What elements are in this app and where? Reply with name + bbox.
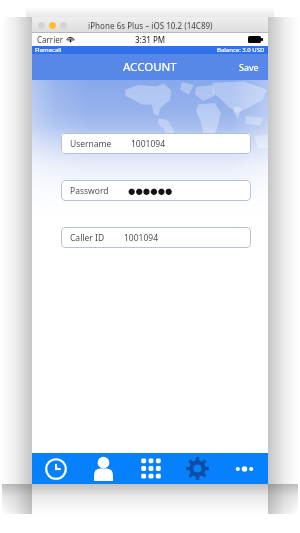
staticText: 1001094 bbox=[131, 138, 166, 150]
staticText: Save bbox=[239, 61, 259, 73]
button[interactable]: Password bbox=[61, 180, 251, 201]
button[interactable]: Settings bbox=[174, 453, 221, 484]
staticText: ACCOUNT bbox=[123, 59, 177, 75]
button[interactable]: Username bbox=[61, 133, 251, 154]
button[interactable]: Recents bbox=[32, 453, 80, 484]
button[interactable]: Keypad bbox=[127, 453, 174, 484]
button[interactable]: Contacts bbox=[80, 453, 127, 484]
staticText: 1001094 bbox=[124, 232, 159, 244]
staticText: Flamecall bbox=[35, 46, 62, 54]
staticText: iPhone 6s Plus – iOS 10.2 (14C89) bbox=[88, 20, 213, 31]
staticText: Balance: 3.0 USD bbox=[217, 46, 265, 54]
staticText: Caller ID bbox=[70, 232, 105, 244]
staticText: Carrier bbox=[37, 34, 64, 45]
button[interactable]: More bbox=[221, 453, 268, 484]
staticText: Username bbox=[70, 138, 112, 150]
button[interactable]: Save bbox=[230, 54, 268, 80]
staticText: ●●●●●● bbox=[128, 186, 173, 196]
staticText: 3:31 PM bbox=[135, 34, 166, 45]
button[interactable]: Caller ID bbox=[61, 227, 251, 248]
staticText: Password bbox=[70, 185, 109, 197]
